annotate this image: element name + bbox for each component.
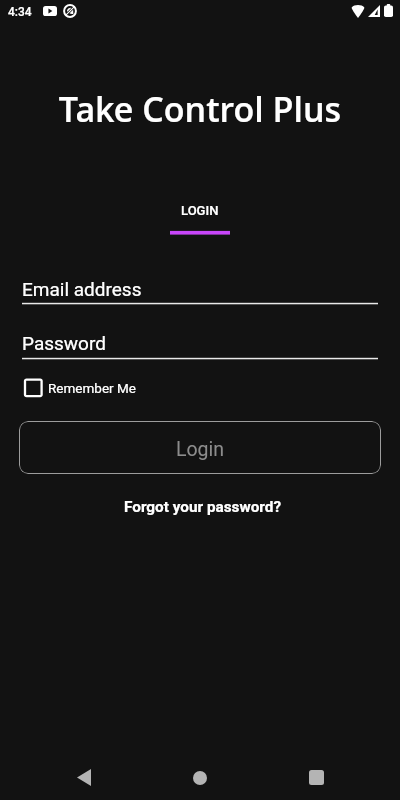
staticText: Password xyxy=(22,332,106,354)
staticText: Remember Me xyxy=(48,380,136,396)
staticText: LOGIN xyxy=(181,203,219,218)
button[interactable]: Home xyxy=(170,746,230,800)
button[interactable]: Login xyxy=(19,421,381,474)
staticText: Login xyxy=(176,438,225,461)
staticText: 4:34 xyxy=(8,5,32,19)
button[interactable]: LOGIN xyxy=(144,198,256,242)
staticText: Take Control Plus xyxy=(0,86,400,132)
button[interactable]: Recent apps xyxy=(286,746,346,800)
staticText: Email address xyxy=(22,278,142,300)
button[interactable]: Back xyxy=(54,746,114,800)
button[interactable]: Forgot your password? xyxy=(116,495,290,519)
button[interactable]: Remember Me xyxy=(22,376,144,400)
